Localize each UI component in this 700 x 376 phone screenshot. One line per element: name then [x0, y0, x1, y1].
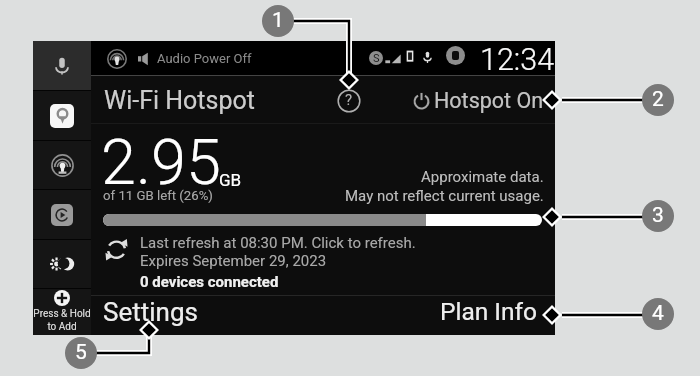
- staticText: 12:34: [480, 42, 555, 77]
- button[interactable]: 2: [642, 84, 674, 116]
- button[interactable]: Hotspot On: [411, 88, 544, 113]
- button[interactable]: Plan Info: [440, 297, 538, 326]
- staticText: Last refresh at 08:30 PM. Click to refre…: [140, 234, 416, 252]
- button[interactable]: 1: [262, 5, 294, 37]
- button[interactable]: 5: [65, 337, 97, 369]
- staticText: GB: [219, 170, 242, 190]
- staticText: Hotspot On: [434, 88, 544, 113]
- staticText: Approximate data.: [421, 168, 544, 186]
- staticText: 3: [652, 203, 664, 228]
- staticText: Wi-Fi Hotspot: [104, 86, 255, 115]
- staticText: Audio Power Off: [157, 51, 252, 66]
- button[interactable]: Media: [33, 190, 91, 239]
- staticText: 4: [652, 301, 664, 326]
- button[interactable]: Navigation: [33, 91, 91, 140]
- button[interactable]: Voice assistant: [33, 41, 91, 90]
- staticText: 0 devices connected: [140, 273, 279, 291]
- staticText: 2.95: [101, 126, 221, 200]
- staticText: of 11 GB left (26%): [103, 188, 213, 203]
- staticText: Press & Hold to Add: [33, 308, 91, 332]
- staticText: May not reflect current usage.: [345, 187, 544, 205]
- button[interactable]: Radio: [33, 141, 91, 189]
- staticText: Expires September 29, 2023: [140, 252, 327, 270]
- button[interactable]: 4: [642, 298, 674, 330]
- button[interactable]: Press and hold to add: [33, 289, 91, 335]
- button[interactable]: Brightness: [33, 240, 91, 288]
- staticText: 5: [75, 340, 87, 365]
- staticText: ?: [345, 91, 353, 109]
- staticText: S: [373, 52, 380, 65]
- button[interactable]: Settings: [103, 297, 198, 327]
- button[interactable]: Help: [335, 87, 363, 115]
- staticText: 2: [652, 87, 664, 112]
- button[interactable]: 3: [642, 200, 674, 232]
- staticText: 1: [272, 8, 284, 33]
